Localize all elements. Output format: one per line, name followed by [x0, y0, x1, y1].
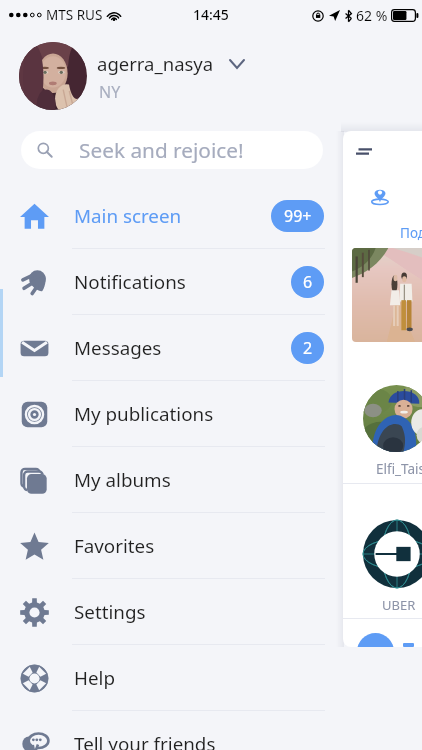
staticText: Settings [74, 599, 146, 625]
staticText: Messages [74, 335, 162, 361]
staticText: Elfi_Tais [376, 460, 422, 478]
button[interactable]: Favorites [0, 513, 343, 579]
staticText: Favorites [74, 533, 155, 559]
button[interactable]: Settings [0, 579, 343, 645]
staticText: Tell your friends [74, 731, 216, 750]
other: Menu [356, 148, 372, 155]
staticText: 62 % [356, 6, 388, 25]
button[interactable]: Seek and rejoice! [21, 131, 323, 169]
staticText: 6 [303, 271, 313, 293]
staticText: 99+ [284, 205, 312, 227]
staticText: Seek and rejoice! [79, 136, 244, 164]
staticText: Notifications [74, 269, 186, 295]
button[interactable]: Notifications [0, 249, 343, 315]
button[interactable]: Help [0, 645, 343, 711]
button[interactable]: Tell your friends [0, 711, 343, 750]
staticText: 2 [303, 337, 313, 359]
button[interactable]: Messages [0, 315, 343, 381]
staticText: UBER [382, 596, 416, 614]
button[interactable]: Main screen [0, 183, 343, 249]
staticText: My publications [74, 401, 214, 427]
staticText: My albums [74, 467, 171, 493]
staticText: 14:45 [193, 5, 229, 24]
staticText: MTS RUS [46, 6, 103, 24]
button[interactable]: Profile photo [19, 42, 87, 110]
button[interactable]: My albums [0, 447, 343, 513]
staticText: Help [74, 665, 115, 691]
staticText: agerra_nasya [97, 51, 214, 76]
button[interactable]: My publications [0, 381, 343, 447]
staticText: Main screen [74, 203, 182, 229]
staticText: Под [400, 224, 422, 242]
staticText: NY [99, 81, 121, 103]
